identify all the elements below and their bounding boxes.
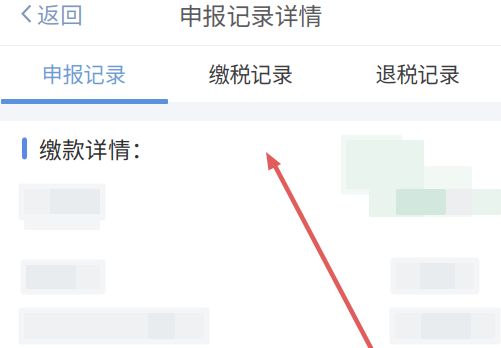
staticText: 返回 (37, 0, 83, 30)
staticText: 缴税记录 (208, 58, 292, 88)
button[interactable]: 缴税记录 (167, 45, 334, 101)
button[interactable]: 退税记录 (334, 45, 501, 101)
button[interactable]: 返回 (0, 0, 93, 34)
staticText: 申报记录详情 (178, 0, 322, 32)
staticText: 退税记录 (375, 58, 459, 88)
staticText: 申报记录 (41, 58, 125, 88)
staticText: 缴款详情： (39, 132, 154, 165)
button[interactable]: 申报记录 (0, 45, 167, 101)
